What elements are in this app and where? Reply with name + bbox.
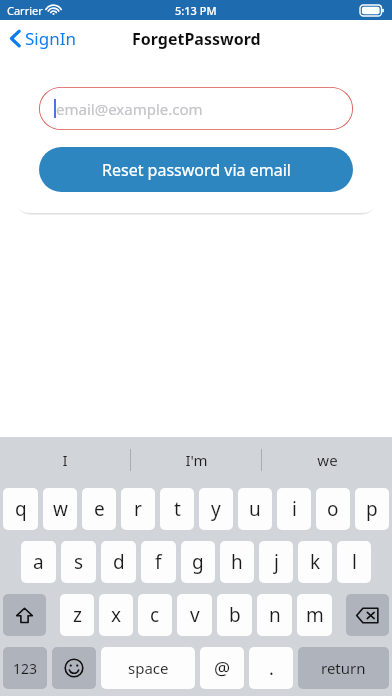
staticText: return bbox=[321, 658, 366, 678]
button[interactable]: f bbox=[141, 541, 176, 583]
staticText: q bbox=[15, 496, 27, 522]
staticText: t bbox=[174, 496, 181, 522]
staticText: 5:13 PM bbox=[175, 3, 217, 18]
staticText: i bbox=[292, 496, 297, 522]
button[interactable]: email@example.com bbox=[39, 87, 353, 130]
button[interactable]: q bbox=[3, 488, 38, 530]
button[interactable]: @ bbox=[200, 647, 244, 689]
staticText: x bbox=[111, 602, 122, 628]
staticText: SignIn bbox=[25, 27, 76, 50]
button[interactable]: n bbox=[257, 594, 292, 636]
button[interactable]: y bbox=[199, 488, 233, 530]
button[interactable]: Reset password via email bbox=[39, 147, 353, 192]
button[interactable]: r bbox=[121, 488, 155, 530]
staticText: we bbox=[317, 450, 338, 470]
staticText: 123 bbox=[13, 659, 38, 678]
staticText: ForgetPassword bbox=[132, 28, 261, 50]
staticText: n bbox=[269, 602, 281, 628]
button[interactable]: x bbox=[99, 594, 133, 636]
staticText: j bbox=[274, 549, 279, 575]
button[interactable]: c bbox=[138, 594, 172, 636]
button[interactable]: I'm bbox=[131, 437, 261, 482]
staticText: s bbox=[74, 549, 84, 575]
button[interactable]: Emoji keyboard bbox=[52, 647, 96, 689]
staticText: space bbox=[128, 658, 169, 678]
button[interactable]: 123 bbox=[3, 647, 47, 689]
staticText: h bbox=[231, 549, 243, 575]
staticText: l bbox=[352, 549, 357, 575]
button[interactable]: Shift bbox=[3, 594, 46, 636]
button[interactable]: s bbox=[61, 541, 96, 583]
button[interactable]: m bbox=[297, 594, 332, 636]
staticText: p bbox=[366, 496, 378, 522]
staticText: b bbox=[229, 602, 241, 628]
staticText: u bbox=[249, 496, 261, 522]
button[interactable]: w bbox=[43, 488, 77, 530]
staticText: z bbox=[73, 602, 82, 628]
staticText: f bbox=[155, 549, 162, 575]
button[interactable]: SignIn bbox=[8, 22, 78, 55]
staticText: d bbox=[113, 549, 125, 575]
button[interactable]: h bbox=[220, 541, 254, 583]
button[interactable]: g bbox=[181, 541, 215, 583]
button[interactable]: t bbox=[160, 488, 194, 530]
staticText: k bbox=[310, 549, 321, 575]
staticText: . bbox=[269, 656, 274, 681]
button[interactable]: z bbox=[60, 594, 94, 636]
button[interactable]: . bbox=[249, 647, 293, 689]
button[interactable]: l bbox=[337, 541, 371, 583]
staticText: email@example.com bbox=[56, 99, 203, 119]
staticText: Carrier bbox=[7, 3, 43, 18]
staticText: I bbox=[62, 450, 68, 470]
staticText: a bbox=[33, 549, 44, 575]
staticText: w bbox=[53, 496, 68, 522]
button[interactable]: o bbox=[316, 488, 350, 530]
staticText: y bbox=[211, 496, 221, 522]
staticText: m bbox=[306, 602, 324, 628]
staticText: v bbox=[190, 602, 200, 628]
button[interactable]: u bbox=[238, 488, 272, 530]
button[interactable]: space bbox=[101, 647, 195, 689]
staticText: r bbox=[134, 496, 142, 522]
button[interactable]: b bbox=[217, 594, 252, 636]
button[interactable]: v bbox=[177, 594, 212, 636]
staticText: Reset password via email bbox=[102, 159, 291, 181]
button[interactable]: p bbox=[355, 488, 389, 530]
staticText: e bbox=[94, 496, 105, 522]
button[interactable]: a bbox=[21, 541, 56, 583]
staticText: g bbox=[192, 549, 204, 575]
button[interactable]: e bbox=[82, 488, 116, 530]
staticText: c bbox=[150, 602, 160, 628]
button[interactable]: return bbox=[298, 647, 389, 689]
staticText: @ bbox=[214, 656, 231, 681]
button[interactable]: Backspace bbox=[346, 594, 389, 636]
button[interactable]: I bbox=[0, 437, 130, 482]
staticText: I'm bbox=[185, 450, 208, 470]
staticText: o bbox=[327, 496, 339, 522]
button[interactable]: k bbox=[298, 541, 332, 583]
button[interactable]: d bbox=[101, 541, 136, 583]
button[interactable]: j bbox=[259, 541, 293, 583]
button[interactable]: i bbox=[277, 488, 311, 530]
button[interactable]: we bbox=[262, 437, 392, 482]
